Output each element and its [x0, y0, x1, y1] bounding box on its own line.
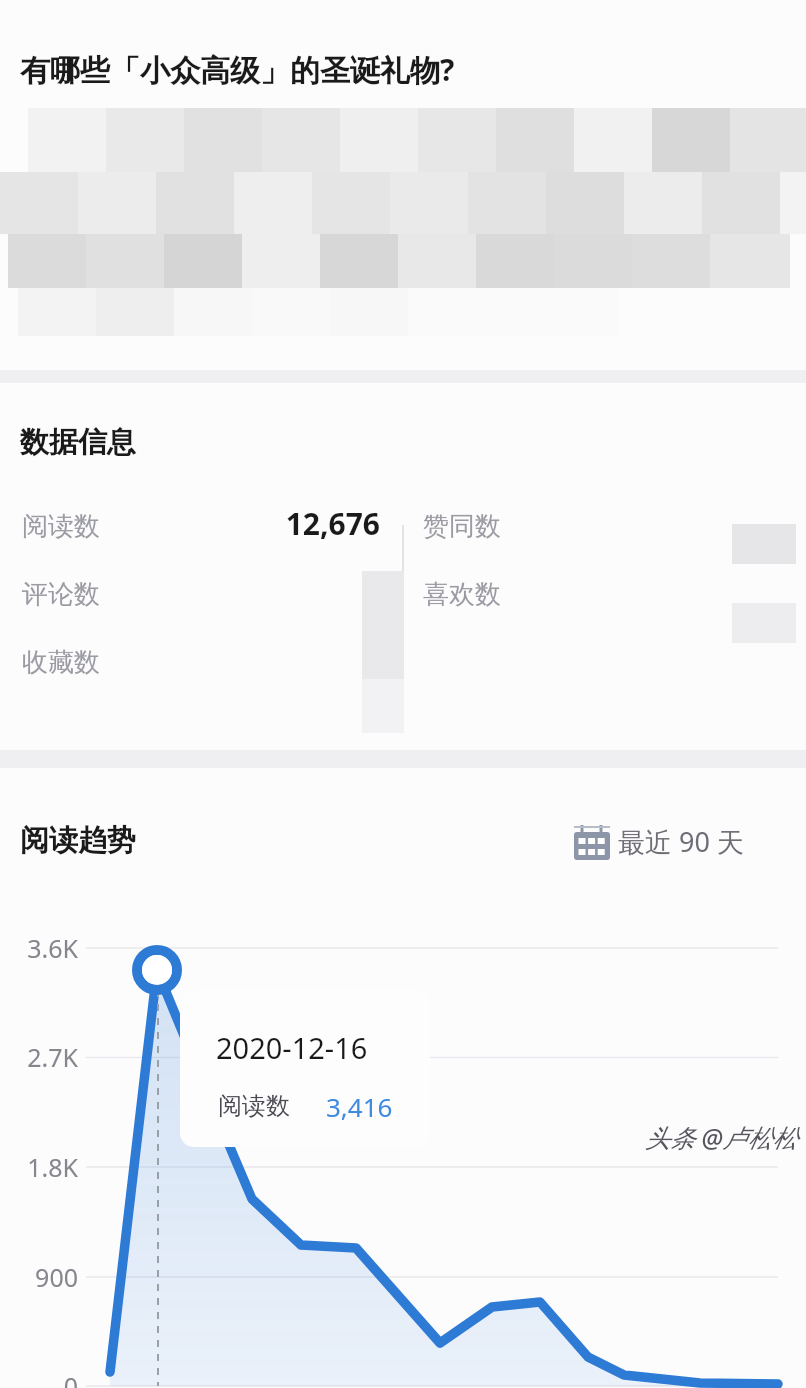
staticText: 赞同数: [423, 510, 501, 543]
staticText: 阅读数: [218, 1091, 290, 1121]
staticText: 有哪些「小众高级」的圣诞礼物?: [20, 49, 455, 90]
staticText: 收藏数: [22, 646, 100, 679]
button[interactable]: 2020-12-16: [180, 990, 430, 1147]
staticText: 阅读数: [22, 510, 100, 543]
staticText: 2020-12-16: [216, 1028, 368, 1067]
staticText: 900: [35, 1260, 78, 1294]
staticText: 3,416: [326, 1089, 393, 1124]
staticText: 阅读趋势: [20, 822, 136, 859]
staticText: 头条 @卢松松: [645, 1120, 798, 1154]
staticText: 数据信息: [20, 424, 136, 461]
button[interactable]: 喜欢数: [415, 569, 605, 619]
button[interactable]: 评论数: [14, 569, 204, 619]
button[interactable]: 阅读数: [14, 501, 204, 551]
staticText: 1.8K: [27, 1150, 78, 1184]
staticText: 3.6K: [27, 931, 78, 965]
staticText: 12,676: [285, 503, 380, 544]
staticText: 评论数: [22, 578, 100, 611]
button[interactable]: 收藏数: [14, 637, 204, 687]
staticText: 喜欢数: [423, 578, 501, 611]
staticText: 最近 90 天: [618, 823, 744, 860]
button[interactable]: 赞同数: [415, 501, 605, 551]
staticText: 2.7K: [27, 1040, 78, 1074]
staticText: 0: [63, 1369, 78, 1388]
button[interactable]: 最近 90 天: [566, 814, 788, 868]
